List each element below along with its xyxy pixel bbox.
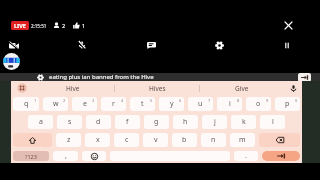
staticText: 6 — [179, 98, 182, 103]
staticText: i — [229, 99, 231, 109]
staticText: ?123 — [25, 153, 37, 160]
staticText: e — [83, 99, 87, 109]
button[interactable]: m — [230, 133, 255, 147]
staticText: 9 — [266, 98, 269, 103]
staticText: 5 — [150, 98, 153, 103]
staticText: a — [39, 117, 43, 127]
staticText: 7 — [208, 98, 211, 103]
button[interactable]: b — [172, 133, 197, 147]
button[interactable]: LIVE — [11, 21, 29, 30]
button[interactable]: , — [53, 151, 78, 161]
staticText: LIVE — [14, 22, 26, 29]
button[interactable]: y — [159, 97, 184, 111]
button[interactable]: Emoji — [82, 151, 106, 161]
button[interactable]: x — [85, 133, 110, 147]
button[interactable]: Enter — [262, 151, 300, 161]
button[interactable]: Give — [200, 81, 284, 95]
staticText: 8 — [237, 98, 240, 103]
staticText: , — [65, 151, 67, 161]
staticText: l — [272, 117, 274, 127]
button[interactable]: Voice input — [284, 81, 302, 95]
button[interactable]: f — [115, 115, 140, 129]
staticText: b — [182, 135, 187, 145]
button[interactable]: p — [275, 97, 300, 111]
button[interactable]: eating plus ian banned from the Hive — [37, 72, 154, 82]
button[interactable]: Hives — [115, 81, 199, 95]
button[interactable]: ?123 — [13, 151, 49, 161]
button[interactable]: n — [201, 133, 226, 147]
button[interactable]: a — [28, 115, 53, 129]
button[interactable]: Close — [280, 17, 296, 33]
staticText: 1 — [82, 22, 86, 29]
button[interactable]: h — [173, 115, 198, 129]
staticText: y — [170, 99, 174, 109]
button[interactable]: j — [202, 115, 227, 129]
button[interactable]: g — [144, 115, 169, 129]
button[interactable]: v — [143, 133, 168, 147]
button[interactable]: o — [246, 97, 271, 111]
staticText: 1 — [34, 98, 37, 103]
staticText: j — [214, 117, 216, 127]
button[interactable]: r — [101, 97, 126, 111]
staticText: 4 — [121, 98, 124, 103]
button[interactable]: Google assistant — [17, 83, 27, 93]
staticText: v — [154, 135, 158, 145]
button[interactable]: q — [13, 97, 39, 111]
staticText: q — [24, 99, 29, 109]
button[interactable]: l — [260, 115, 285, 129]
button[interactable]: c — [114, 133, 139, 147]
staticText: 2 — [62, 22, 66, 29]
button[interactable]: Send — [298, 73, 311, 82]
staticText: k — [242, 117, 246, 127]
staticText: 0 — [295, 98, 298, 103]
button[interactable]: z — [56, 133, 81, 147]
button[interactable]: d — [86, 115, 111, 129]
staticText: x — [96, 135, 100, 145]
staticText: f — [126, 117, 129, 127]
button[interactable]: u — [188, 97, 213, 111]
button[interactable]: k — [231, 115, 256, 129]
staticText: s — [68, 117, 72, 127]
button[interactable]: Pause — [275, 33, 299, 57]
staticText: Hive — [66, 84, 80, 93]
staticText: n — [211, 135, 216, 145]
button[interactable]: Settings — [207, 33, 231, 57]
staticText: c — [125, 135, 129, 145]
staticText: t — [141, 99, 144, 109]
staticText: 2:15:51 — [31, 23, 47, 29]
staticText: Hives — [149, 84, 166, 93]
staticText: r — [112, 99, 115, 109]
staticText: h — [183, 117, 188, 127]
staticText: o — [256, 99, 261, 109]
button[interactable]: Mic off — [70, 33, 94, 57]
staticText: Give — [235, 84, 249, 93]
button[interactable]: Shift — [13, 133, 52, 147]
button[interactable]: Backspace — [259, 133, 300, 147]
button[interactable]: e — [72, 97, 97, 111]
button[interactable]: Hive — [31, 81, 114, 95]
button[interactable]: s — [57, 115, 82, 129]
staticText: 3 — [92, 98, 95, 103]
button[interactable]: Profile — [3, 53, 20, 70]
staticText: u — [198, 99, 203, 109]
staticText: . — [245, 151, 247, 161]
staticText: 2 — [63, 98, 66, 103]
button[interactable]: . — [234, 151, 258, 161]
staticText: w — [53, 99, 59, 109]
staticText: d — [96, 117, 101, 127]
button[interactable]: i — [217, 97, 242, 111]
button[interactable]: Chat — [139, 33, 163, 57]
button[interactable]: w — [43, 97, 68, 111]
staticText: g — [154, 117, 159, 127]
staticText: m — [239, 135, 246, 145]
staticText: eating plus ian banned from the Hive — [49, 73, 154, 81]
button[interactable]: t — [130, 97, 155, 111]
button[interactable]: Camera off — [2, 33, 26, 57]
staticText: p — [285, 99, 290, 109]
staticText: z — [67, 135, 71, 145]
